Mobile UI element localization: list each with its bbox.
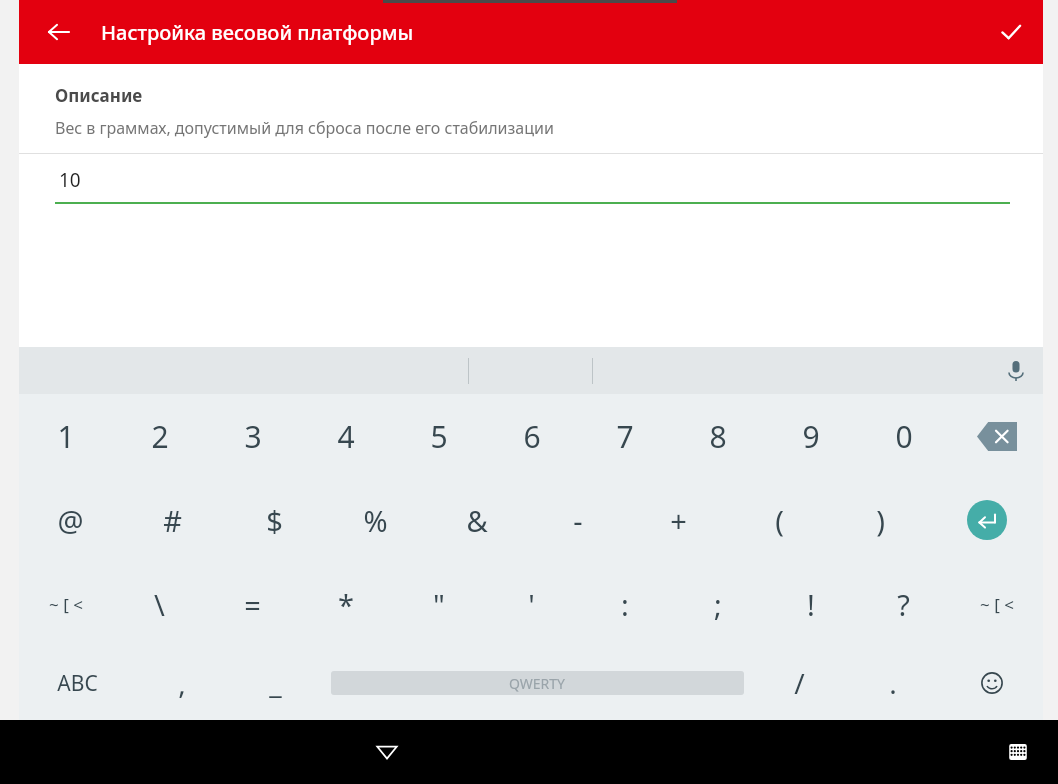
staticText: ~ [ < <box>49 593 83 616</box>
button[interactable]: 2 <box>113 394 206 478</box>
staticText: 2 <box>151 416 169 457</box>
button[interactable]: ! <box>764 562 857 646</box>
button[interactable]: ~ [ < <box>19 562 113 646</box>
staticText: QWERTY <box>509 674 566 693</box>
staticText: ; <box>714 585 722 624</box>
button[interactable]: * <box>299 562 392 646</box>
staticText: ~ [ < <box>980 593 1014 616</box>
button[interactable]: QWERTY <box>322 646 752 720</box>
button[interactable]: \ <box>113 562 206 646</box>
staticText: _ <box>269 664 282 702</box>
staticText: ) <box>876 501 885 540</box>
button[interactable]: 8 <box>671 394 764 478</box>
button[interactable]: : <box>578 562 671 646</box>
staticText: ' <box>528 585 535 624</box>
button[interactable]: Save <box>987 8 1035 56</box>
button[interactable]: Voice input <box>995 350 1037 392</box>
button[interactable]: # <box>121 478 223 562</box>
button[interactable]: $ <box>223 478 325 562</box>
staticText: \ <box>154 585 165 624</box>
staticText: 3 <box>244 416 262 457</box>
button[interactable]: ABC <box>19 646 135 720</box>
staticText: 1 <box>57 416 75 457</box>
staticText: ? <box>897 585 910 624</box>
button[interactable]: 9 <box>764 394 857 478</box>
staticText: ( <box>775 501 784 540</box>
button[interactable]: % <box>325 478 426 562</box>
button[interactable]: = <box>206 562 299 646</box>
button[interactable]: 6 <box>485 394 578 478</box>
staticText: Вес в граммах, допустимый для сброса пос… <box>55 117 554 139</box>
button[interactable]: Back <box>35 8 83 56</box>
staticText: ! <box>807 585 815 624</box>
staticText: , <box>178 664 186 702</box>
button[interactable]: Hide keyboard <box>363 728 411 776</box>
staticText: 10 <box>59 167 81 193</box>
staticText: - <box>573 501 583 540</box>
button[interactable]: 7 <box>578 394 671 478</box>
button[interactable]: . <box>846 646 940 720</box>
button[interactable]: 3 <box>206 394 299 478</box>
button[interactable]: Switch keyboard <box>998 732 1038 772</box>
staticText: + <box>670 501 687 540</box>
button[interactable]: + <box>628 478 729 562</box>
staticText: Описание <box>55 84 143 107</box>
staticText: / <box>794 664 805 702</box>
staticText: ABC <box>57 669 98 698</box>
button[interactable]: Backspace <box>950 394 1043 478</box>
button[interactable]: ( <box>729 478 830 562</box>
button[interactable]: / <box>752 646 846 720</box>
staticText: 7 <box>616 416 634 457</box>
staticText: & <box>466 501 488 540</box>
button[interactable]: Emoji <box>940 646 1043 720</box>
staticText: 6 <box>523 416 541 457</box>
staticText: 5 <box>430 416 448 457</box>
button[interactable]: 5 <box>392 394 485 478</box>
button[interactable]: @ <box>19 478 121 562</box>
staticText: @ <box>57 501 84 540</box>
button[interactable]: ; <box>671 562 764 646</box>
staticText: " <box>433 585 445 624</box>
staticText: % <box>363 501 388 540</box>
button[interactable]: 4 <box>299 394 392 478</box>
button[interactable]: Enter <box>931 478 1043 562</box>
staticText: 0 <box>895 416 913 457</box>
button[interactable]: _ <box>228 646 322 720</box>
button[interactable]: " <box>392 562 485 646</box>
staticText: Настройка весовой платформы <box>101 19 414 46</box>
staticText: = <box>244 585 261 624</box>
staticText: 4 <box>337 416 355 457</box>
staticText: : <box>621 585 629 624</box>
staticText: . <box>889 664 897 702</box>
button[interactable]: ' <box>485 562 578 646</box>
staticText: 8 <box>709 416 727 457</box>
staticText: # <box>163 501 182 540</box>
button[interactable]: 0 <box>857 394 950 478</box>
button[interactable]: ) <box>830 478 931 562</box>
button[interactable]: ? <box>857 562 950 646</box>
button[interactable]: 10 <box>19 154 1043 204</box>
button[interactable]: & <box>426 478 527 562</box>
staticText: 9 <box>802 416 820 457</box>
button[interactable]: 1 <box>19 394 113 478</box>
button[interactable]: , <box>135 646 228 720</box>
staticText: $ <box>266 501 283 540</box>
button[interactable]: - <box>527 478 628 562</box>
button[interactable]: ~ [ < <box>950 562 1043 646</box>
staticText: * <box>338 585 354 624</box>
